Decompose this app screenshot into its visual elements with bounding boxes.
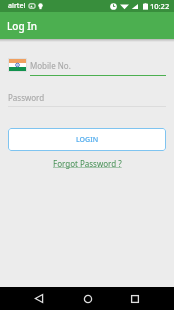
button[interactable]: Recent apps [123, 287, 147, 310]
staticText: LOGIN [76, 135, 99, 145]
button[interactable]: Forgot Password ? [53, 158, 122, 169]
staticText: Password [8, 92, 45, 103]
staticText: Log In [7, 19, 38, 33]
staticText: airtel [8, 1, 26, 11]
staticText: 10:22 [150, 1, 170, 11]
button[interactable]: LOGIN [8, 128, 166, 151]
staticText: Mobile No. [30, 60, 71, 71]
button[interactable]: Home [76, 287, 100, 310]
button[interactable]: Back [27, 287, 51, 310]
